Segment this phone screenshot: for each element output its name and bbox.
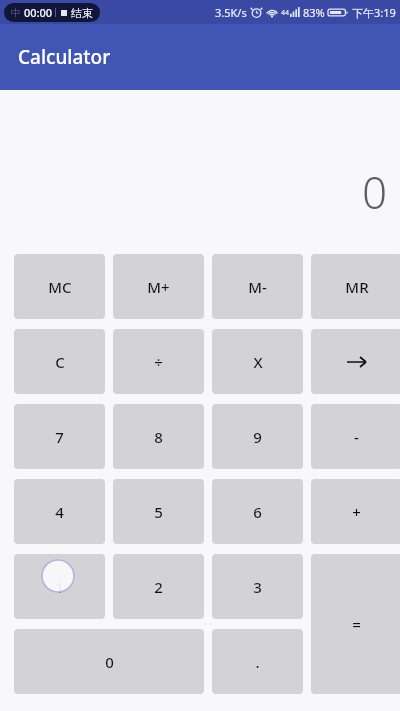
button[interactable]: M+ [113, 254, 204, 319]
button[interactable]: C [14, 329, 105, 394]
staticText: 0 [362, 162, 388, 222]
staticText: 0 [105, 652, 114, 672]
staticText: 4 [55, 502, 64, 522]
staticText: 9 [253, 427, 262, 447]
staticText: 结束 [71, 6, 93, 20]
button[interactable]: - [311, 404, 400, 469]
staticText: 下午3:19 [352, 5, 396, 20]
button[interactable]: 2 [113, 554, 204, 619]
staticText: M+ [147, 277, 170, 297]
staticText: 8 [154, 427, 163, 447]
staticText: 1 [55, 577, 64, 597]
button[interactable]: 6 [212, 479, 303, 544]
staticText: 00:00 [24, 5, 53, 20]
staticText: 5 [154, 502, 163, 522]
staticText: + [352, 502, 361, 522]
button[interactable]: MC [14, 254, 105, 319]
staticText: X [253, 352, 263, 372]
staticText: MR [345, 277, 369, 297]
button[interactable]: M- [212, 254, 303, 319]
staticText: - [354, 427, 359, 447]
staticText: 83% [303, 5, 325, 20]
button[interactable]: 4 [14, 479, 105, 544]
button[interactable]: 5 [113, 479, 204, 544]
staticText: MC [48, 277, 72, 297]
staticText: . [255, 652, 260, 672]
staticText: M- [248, 277, 267, 297]
button[interactable]: 1 [14, 554, 105, 619]
staticText: 2 [154, 577, 163, 597]
button[interactable]: MR [311, 254, 400, 319]
button[interactable] [311, 329, 400, 394]
staticText: = [352, 614, 361, 634]
staticText: 7 [55, 427, 64, 447]
staticText: 3.5K/s [215, 5, 247, 20]
staticText: 3 [253, 577, 262, 597]
staticText: 44 [281, 8, 290, 18]
button[interactable]: + [311, 479, 400, 544]
staticText: 中 [11, 6, 21, 19]
button[interactable]: 8 [113, 404, 204, 469]
button[interactable]: ÷ [113, 329, 204, 394]
button[interactable]: 7 [14, 404, 105, 469]
button[interactable]: 3 [212, 554, 303, 619]
button[interactable]: 0 [14, 629, 204, 694]
staticText: Calculator [18, 44, 111, 70]
button[interactable]: . [212, 629, 303, 694]
button[interactable]: = [311, 554, 400, 694]
staticText: C [55, 352, 65, 372]
button[interactable]: 9 [212, 404, 303, 469]
staticText: 6 [253, 502, 262, 522]
staticText: ÷ [154, 352, 163, 372]
button[interactable]: X [212, 329, 303, 394]
